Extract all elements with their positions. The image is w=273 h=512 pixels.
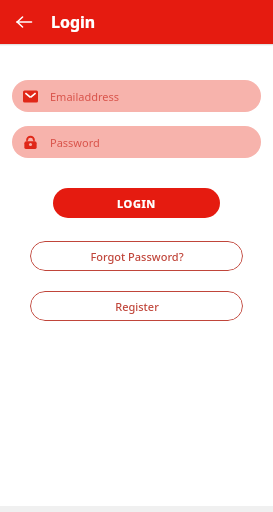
button[interactable]: Emailaddress bbox=[12, 80, 261, 112]
button[interactable]: Forgot Password? bbox=[30, 241, 243, 271]
staticText: Forgot Password? bbox=[90, 249, 184, 264]
staticText: Password bbox=[50, 135, 100, 150]
staticText: Emailaddress bbox=[50, 89, 120, 104]
staticText: Register bbox=[115, 299, 159, 314]
button[interactable]: LOGIN bbox=[53, 188, 220, 218]
button[interactable]: Password bbox=[12, 126, 261, 158]
button[interactable]: Register bbox=[30, 291, 243, 321]
staticText: Login bbox=[51, 11, 96, 33]
button[interactable]: Back bbox=[12, 10, 36, 34]
staticText: LOGIN bbox=[117, 196, 156, 211]
